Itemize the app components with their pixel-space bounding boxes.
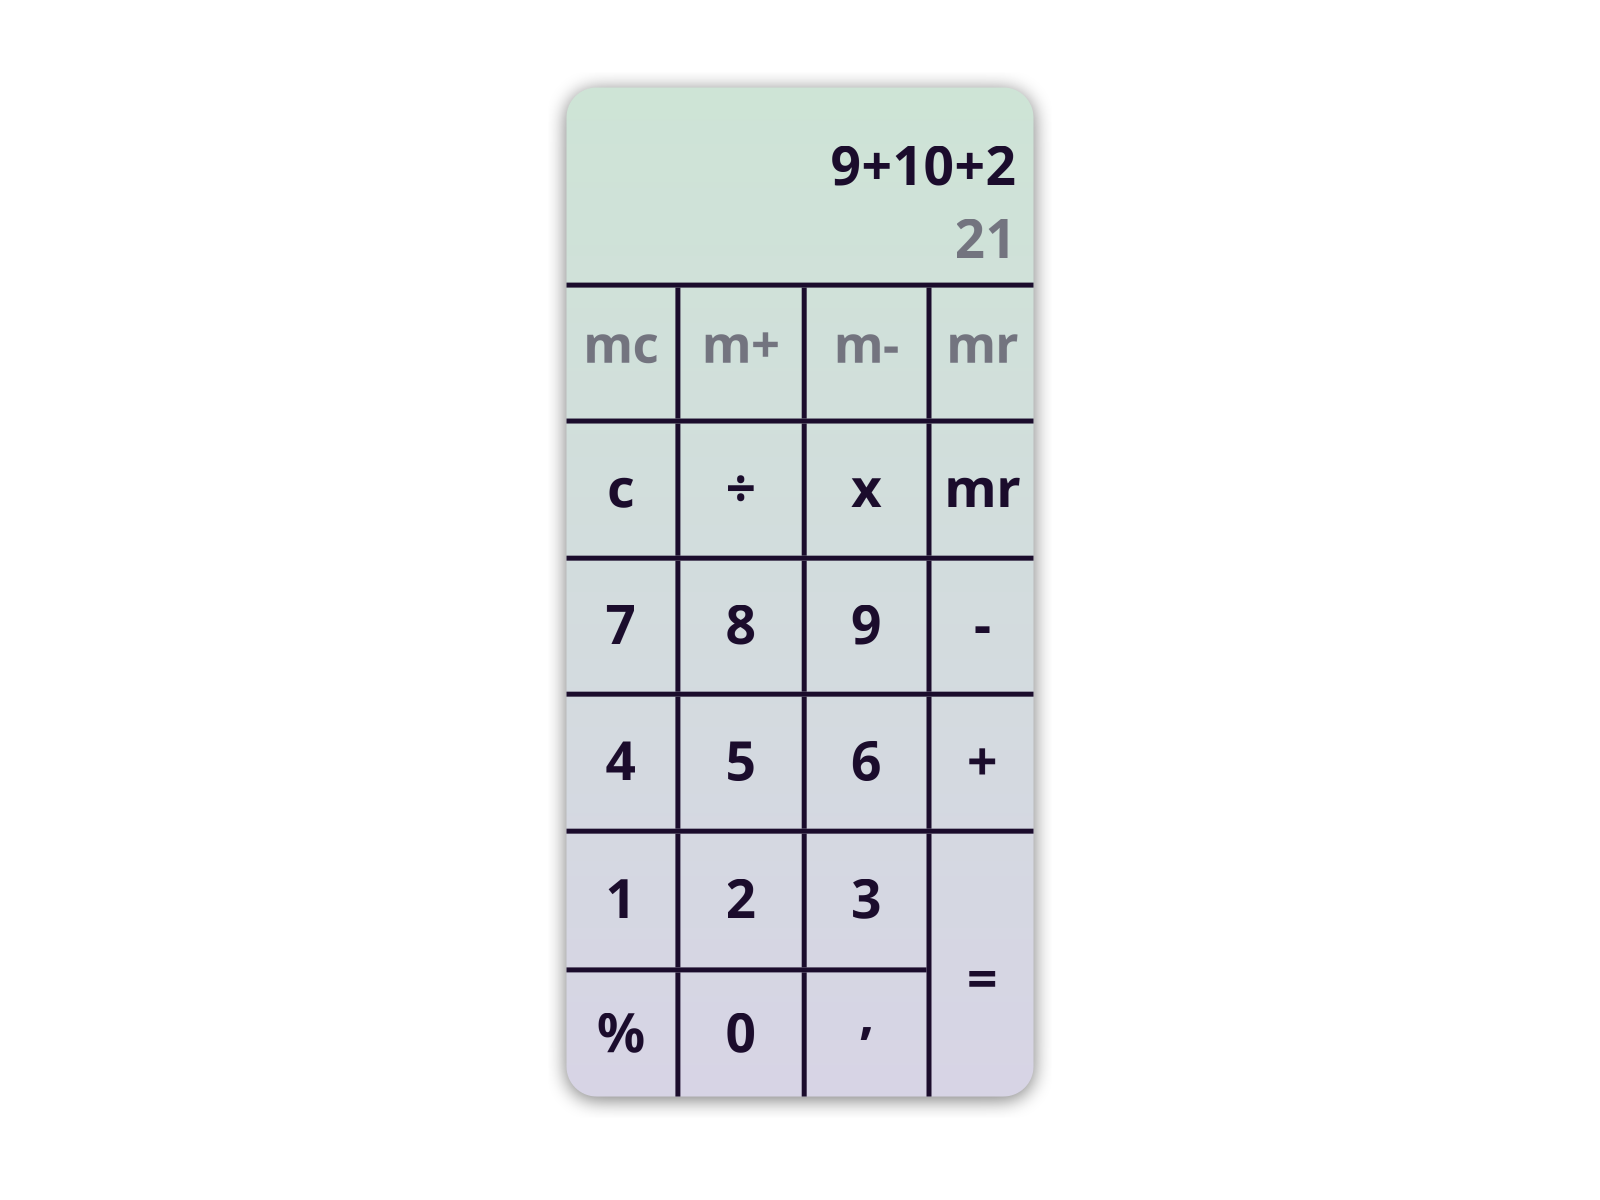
button[interactable]: Memory clear: [566, 288, 675, 418]
button[interactable]: Memory recall: [931, 423, 1033, 556]
button[interactable]: Minus: [931, 561, 1033, 692]
staticText: 21: [954, 202, 1016, 273]
button[interactable]: 1: [566, 834, 675, 967]
button[interactable]: Memory add: [680, 288, 802, 418]
staticText: mr: [944, 451, 1020, 522]
button[interactable]: Memory subtract: [807, 288, 926, 418]
button[interactable]: 8: [680, 561, 802, 692]
button[interactable]: Multiply: [807, 423, 926, 556]
button[interactable]: 6: [807, 697, 926, 829]
staticText: 1: [605, 862, 636, 933]
button[interactable]: 4: [566, 697, 675, 829]
staticText: +: [967, 724, 998, 795]
staticText: 4: [605, 724, 636, 795]
staticText: m-: [834, 309, 899, 377]
button[interactable]: Equals: [931, 834, 1033, 1096]
button[interactable]: 0: [680, 972, 802, 1096]
staticText: 7: [605, 588, 636, 659]
staticText: ÷: [725, 451, 756, 522]
staticText: %: [597, 996, 645, 1067]
button[interactable]: Divide: [680, 423, 802, 556]
staticText: -: [974, 588, 991, 659]
button[interactable]: 7: [566, 561, 675, 692]
staticText: x: [851, 451, 882, 522]
staticText: 3: [851, 862, 882, 933]
staticText: c: [607, 451, 635, 522]
staticText: 5: [725, 724, 756, 795]
staticText: mc: [583, 309, 658, 377]
button[interactable]: 5: [680, 697, 802, 829]
button[interactable]: Percent: [566, 972, 675, 1096]
button[interactable]: 3: [807, 834, 926, 967]
button[interactable]: 2: [680, 834, 802, 967]
button[interactable]: 9: [807, 561, 926, 692]
staticText: 6: [851, 724, 882, 795]
staticText: mr: [946, 309, 1018, 377]
button[interactable]: Clear: [566, 423, 675, 556]
staticText: 9: [851, 588, 882, 659]
staticText: 8: [725, 588, 756, 659]
staticText: ,: [859, 977, 874, 1048]
staticText: 9+10+2: [830, 129, 1016, 200]
staticText: =: [967, 942, 998, 1012]
staticText: 2: [725, 862, 756, 933]
staticText: 0: [725, 996, 756, 1067]
button[interactable]: Memory recall: [931, 288, 1033, 418]
staticText: m+: [702, 309, 780, 377]
button[interactable]: Plus: [931, 697, 1033, 829]
button[interactable]: Decimal separator: [807, 972, 926, 1096]
